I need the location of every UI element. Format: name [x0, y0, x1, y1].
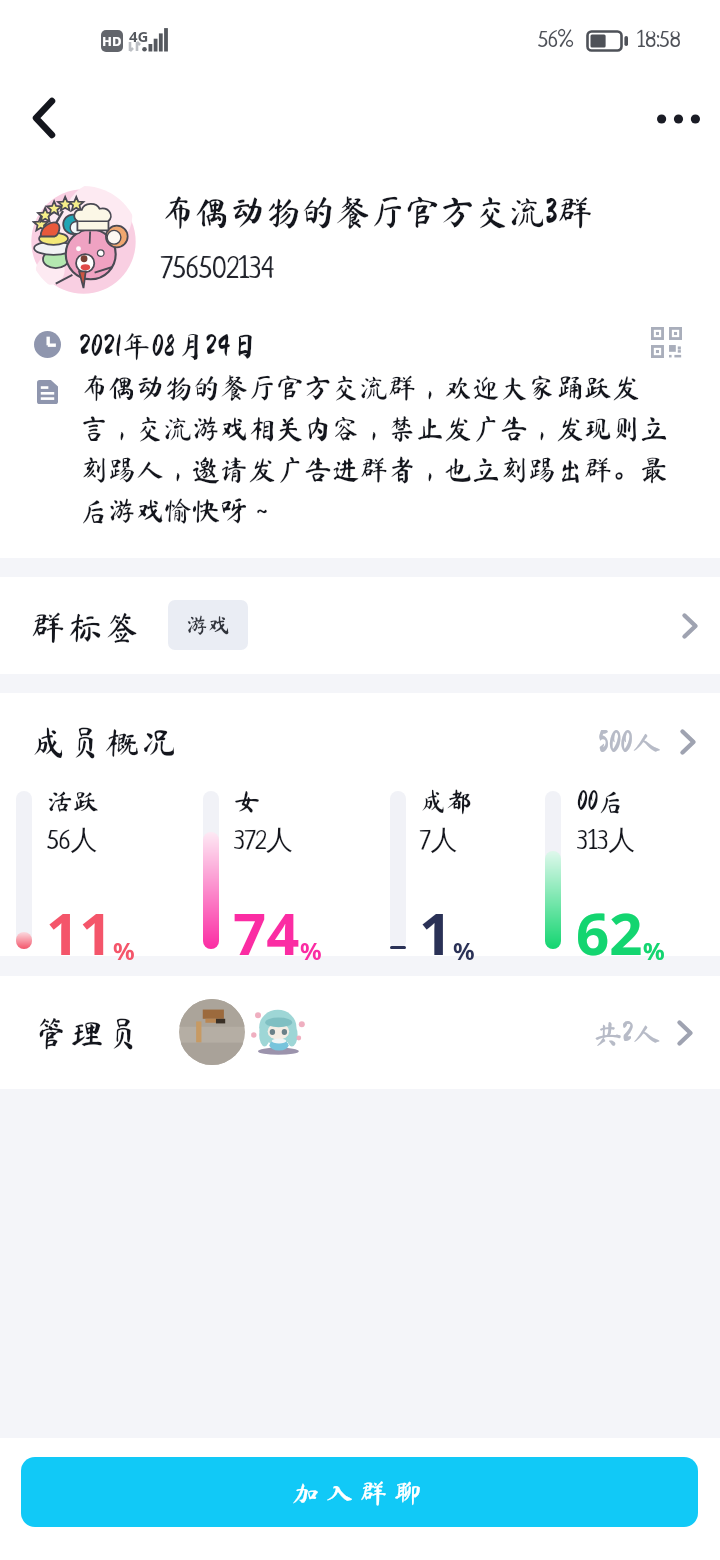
staticText: 共2人: [594, 1019, 661, 1047]
staticText: 11: [46, 893, 113, 972]
staticText: 500人: [598, 727, 662, 756]
button[interactable]: Back: [14, 88, 74, 148]
staticText: 372人: [234, 823, 294, 857]
button[interactable]: 成员概况: [0, 693, 720, 789]
staticText: %: [113, 934, 135, 967]
staticText: 00后: [577, 788, 624, 814]
staticText: 活跃: [47, 788, 100, 814]
staticText: 布偶动物的餐厅官方交流3群: [160, 194, 593, 229]
staticText: 4G: [129, 26, 149, 46]
staticText: %: [453, 934, 475, 967]
staticText: 313人: [577, 823, 636, 857]
staticText: 74: [233, 893, 300, 972]
staticText: 成员概况: [31, 725, 179, 759]
staticText: 1: [419, 893, 453, 972]
staticText: HD: [102, 32, 122, 50]
staticText: 群标签: [31, 610, 142, 644]
staticText: 布偶动物的餐厅官方交流群，欢迎大家踊跃发言，交流游戏相关内容，禁止发广告，发现则…: [80, 373, 680, 524]
staticText: 756502134: [161, 255, 275, 287]
staticText: 62: [576, 893, 643, 972]
button[interactable]: More options: [648, 89, 708, 149]
button[interactable]: Group QR code: [644, 320, 688, 364]
staticText: %: [300, 934, 322, 967]
staticText: 56人: [47, 823, 98, 857]
staticText: 女: [234, 788, 261, 814]
staticText: 成都: [420, 788, 473, 814]
staticText: 56%: [538, 29, 574, 53]
staticText: 2021年08月24日: [79, 331, 261, 360]
button[interactable]: 加入群聊: [21, 1457, 698, 1527]
button[interactable]: 群标签: [0, 577, 720, 674]
staticText: 7人: [420, 823, 458, 857]
staticText: %: [643, 934, 665, 967]
staticText: 游戏: [186, 614, 231, 636]
staticText: 加入群聊: [292, 1479, 428, 1506]
staticText: 管理员: [34, 1016, 142, 1050]
staticText: 18:58: [637, 29, 681, 53]
button[interactable]: 管理员: [0, 976, 720, 1089]
